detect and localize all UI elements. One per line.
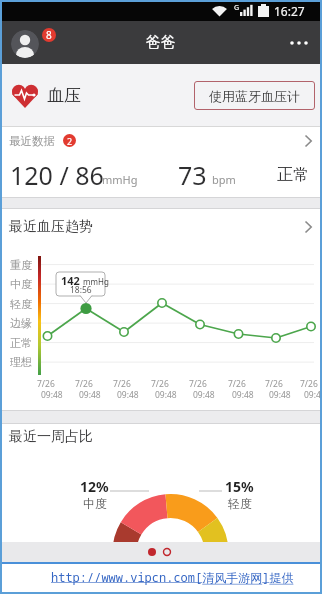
staticText: 7/26 (228, 378, 246, 390)
staticText: 最近血压趋势 (9, 218, 93, 236)
button[interactable] (11, 30, 39, 58)
staticText: 血压 (47, 85, 81, 106)
button[interactable]: 使用蓝牙血压计 (194, 81, 315, 110)
staticText: 重度 (10, 258, 32, 272)
staticText: G (234, 3, 240, 13)
staticText: 18:56 (70, 284, 92, 296)
staticText: 15% (225, 477, 254, 496)
staticText: mmHg (102, 172, 138, 187)
staticText: http://www.vipcn.com[清风手游网]提供 (51, 569, 294, 585)
staticText: 09:48 (304, 389, 322, 401)
staticText: 09:48 (269, 389, 291, 401)
staticText: 8 (46, 28, 52, 42)
staticText: 73 (178, 158, 207, 192)
staticText: bpm (212, 172, 236, 187)
button[interactable]: 最近血压趋势 (0, 209, 322, 245)
staticText: 中度 (10, 277, 32, 291)
staticText: 09:48 (41, 389, 63, 401)
staticText: 09:48 (79, 389, 101, 401)
staticText: 轻度 (228, 496, 252, 511)
staticText: 使用蓝牙血压计 (209, 88, 300, 104)
button[interactable]: http://www.vipcn.com[清风手游网]提供 (0, 564, 322, 594)
staticText: 中度 (83, 496, 107, 511)
staticText: 7/26 (300, 378, 318, 390)
staticText: 09:48 (117, 389, 139, 401)
staticText: 16:27 (274, 3, 305, 19)
button[interactable]: 最近数据 (0, 127, 322, 154)
staticText: 142 (61, 273, 80, 288)
staticText: 09:48 (155, 389, 177, 401)
staticText: 7/26 (113, 378, 131, 390)
staticText: 爸爸 (146, 33, 176, 52)
staticText: 正常 (277, 165, 309, 185)
staticText: 12% (80, 477, 109, 496)
staticText: 09:48 (193, 389, 215, 401)
staticText: 理想 (10, 355, 32, 369)
staticText: 7/26 (75, 378, 93, 390)
staticText: 7/26 (189, 378, 207, 390)
staticText: 正常 (10, 336, 32, 350)
staticText: 2 (67, 135, 73, 147)
staticText: 09:48 (232, 389, 254, 401)
staticText: 边缘 (10, 316, 32, 330)
staticText: 7/26 (265, 378, 283, 390)
staticText: 最近一周占比 (9, 428, 93, 446)
staticText: 120 / 86 (10, 158, 104, 192)
staticText: 最近数据 (9, 134, 55, 148)
staticText: 轻度 (10, 297, 32, 311)
staticText: 7/26 (151, 378, 169, 390)
staticText: mmHg (83, 276, 109, 287)
staticText: 7/26 (37, 378, 55, 390)
button[interactable] (288, 30, 314, 56)
